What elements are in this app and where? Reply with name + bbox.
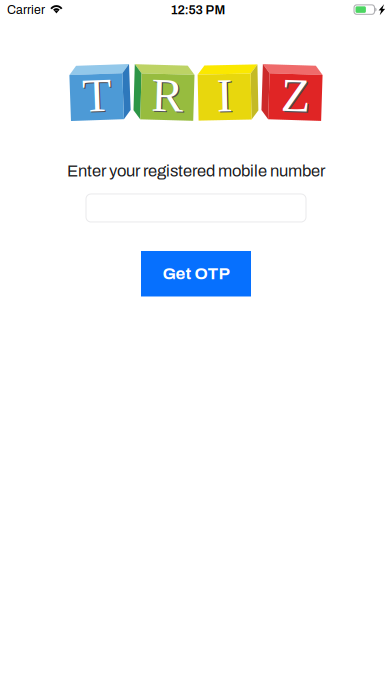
button[interactable]: Get OTP — [141, 251, 251, 296]
staticText: T — [83, 69, 112, 123]
staticText: T — [82, 68, 111, 122]
staticText: Carrier — [7, 3, 45, 17]
staticText: R — [151, 68, 183, 122]
staticText: I — [218, 69, 234, 123]
button[interactable] — [86, 194, 306, 222]
staticText: Get OTP — [162, 265, 229, 283]
staticText: I — [216, 68, 232, 122]
staticText: Z — [282, 69, 311, 123]
staticText: Enter your registered mobile number — [67, 162, 325, 180]
staticText: R — [153, 69, 185, 123]
staticText: 12:53 PM — [170, 3, 225, 17]
staticText: Z — [281, 68, 310, 122]
